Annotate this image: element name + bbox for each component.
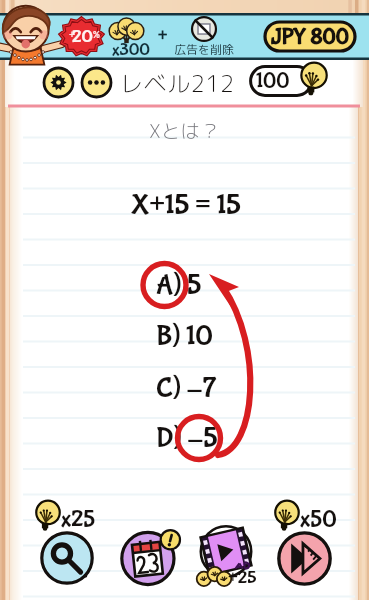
button[interactable]: Settings (42, 66, 75, 99)
button[interactable]: C) -7 (156, 372, 217, 405)
staticText: 100 (256, 69, 290, 93)
button[interactable]: Watch video for coins (198, 527, 254, 579)
button[interactable]: D) -5 (156, 422, 218, 455)
button[interactable]: Remove ads (171, 16, 237, 58)
button[interactable]: + (60, 18, 103, 55)
staticText: A) 5 (156, 269, 202, 302)
staticText: B) 10 (156, 320, 213, 353)
staticText: C) -7 (156, 372, 217, 405)
button[interactable]: 100 (249, 65, 313, 97)
button[interactable]: B) 10 (156, 320, 213, 353)
button[interactable]: Hint (39, 530, 95, 586)
button[interactable]: Skip level (276, 530, 333, 587)
staticText: + (69, 29, 75, 42)
staticText: 20 (72, 27, 93, 48)
staticText: x25 (61, 506, 96, 533)
button[interactable]: JPY 800 (263, 20, 357, 53)
staticText: % (93, 29, 100, 42)
button[interactable]: Menu (80, 66, 113, 99)
staticText: X+15 = 15 (131, 188, 242, 222)
staticText: 広告を削除 (174, 41, 235, 58)
staticText: x50 (300, 506, 337, 533)
staticText: +25 (228, 568, 257, 589)
staticText: レベル212 (120, 67, 235, 99)
staticText: Xとは？ (149, 118, 220, 145)
button[interactable]: Daily reward (120, 530, 180, 590)
staticText: JPY 800 (271, 25, 350, 49)
staticText: + (158, 27, 168, 47)
staticText: x300 (112, 41, 151, 61)
button[interactable]: A) 5 (156, 269, 202, 302)
staticText: D) -5 (156, 422, 218, 455)
